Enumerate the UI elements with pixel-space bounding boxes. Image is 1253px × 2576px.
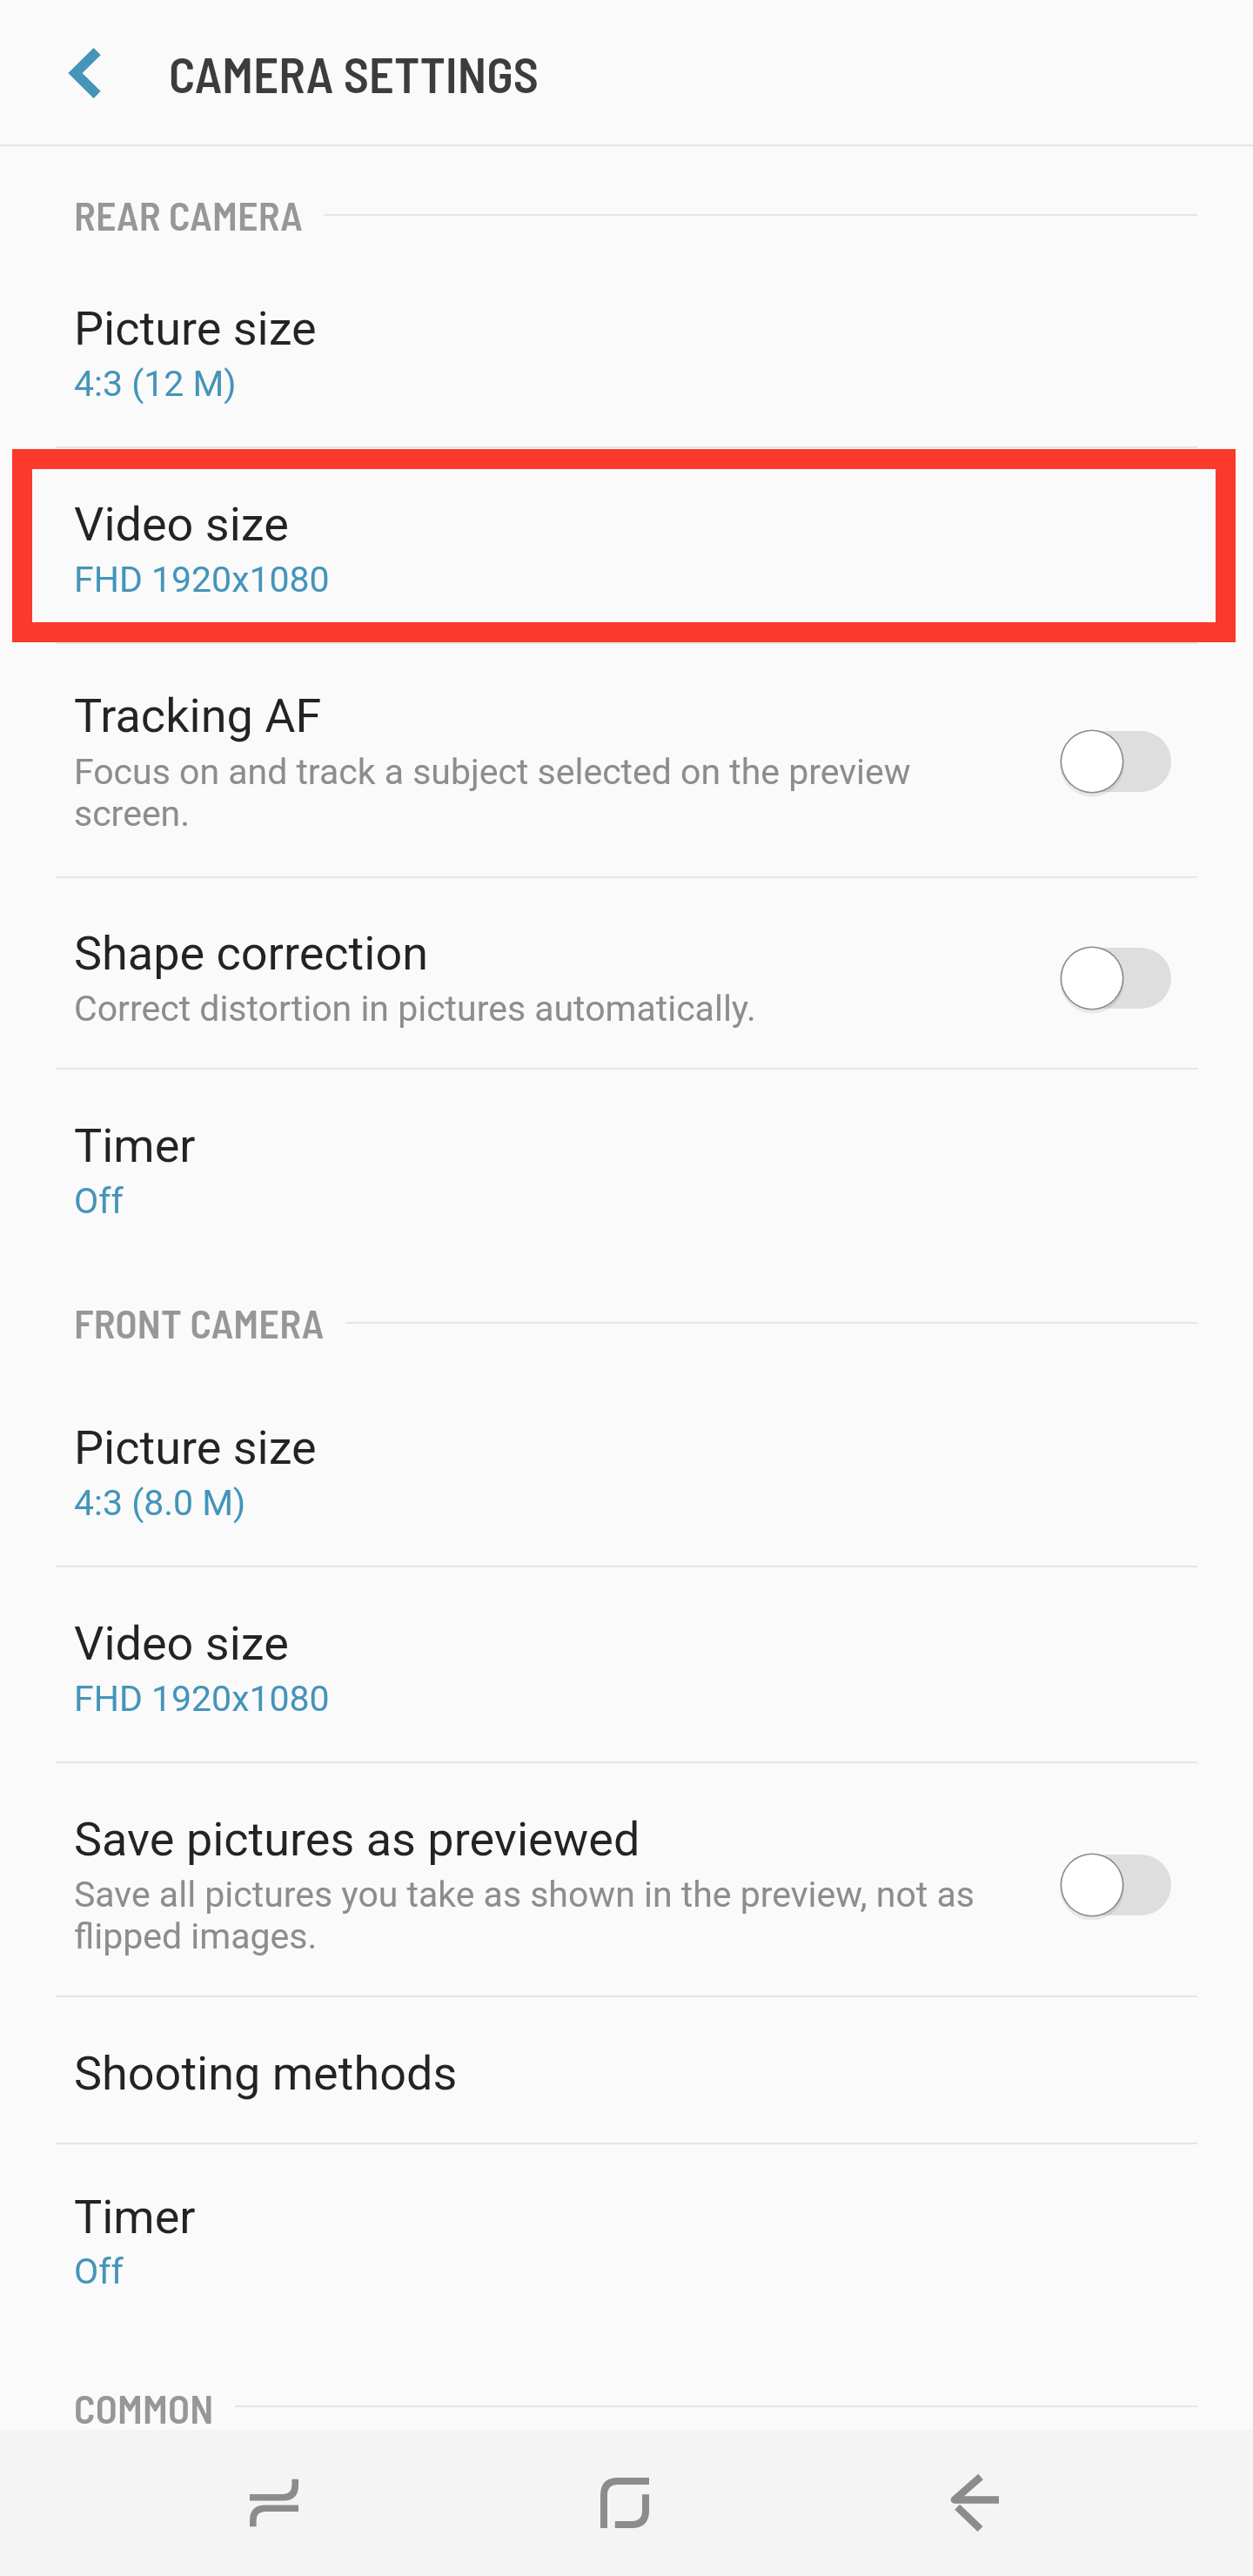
staticText: Timer (74, 2190, 196, 2244)
staticText: COMMON (74, 2384, 214, 2428)
button[interactable]: Picture size (0, 1372, 1253, 1566)
button[interactable]: Timer (0, 2144, 1253, 2336)
staticText: Picture size (74, 1420, 317, 1475)
staticText: Video size (74, 1616, 289, 1671)
staticText: Shooting methods (74, 2046, 458, 2101)
button[interactable]: Navigate up (44, 31, 127, 115)
staticText: Focus on and track a subject selected on… (74, 751, 997, 835)
button[interactable]: Save pictures as previewed (0, 1763, 1253, 1996)
staticText: Save all pictures you take as shown in t… (74, 1874, 997, 1957)
button[interactable]: Picture size (0, 252, 1253, 446)
button[interactable]: Timer (0, 1070, 1253, 1257)
button[interactable]: Tracking AF (0, 644, 1253, 876)
staticText: Tracking AF (74, 688, 322, 743)
staticText: Picture size (74, 301, 317, 356)
staticText: 4:3 (12 M) (74, 363, 237, 405)
button[interactable]: Shooting methods (0, 1997, 1253, 2143)
button[interactable]: Video size (0, 1567, 1253, 1761)
button[interactable]: Toggle, off (1058, 728, 1171, 795)
staticText: Off (74, 2251, 124, 2292)
staticText: FRONT CAMERA (74, 1298, 325, 1346)
staticText: Video size (74, 497, 289, 552)
staticText: CAMERA SETTINGS (169, 44, 539, 103)
button[interactable]: Shape correction (0, 878, 1253, 1068)
staticText: Timer (74, 1118, 196, 1173)
button[interactable]: Recent apps (196, 2430, 352, 2576)
staticText: Shape correction (74, 926, 429, 981)
staticText: FHD 1920x1080 (74, 559, 330, 600)
button[interactable]: Video size (0, 448, 1253, 642)
button[interactable]: Home (546, 2430, 703, 2576)
button[interactable]: Toggle, off (1058, 1851, 1171, 1919)
staticText: Correct distortion in pictures automatic… (74, 988, 756, 1030)
button[interactable]: Back (896, 2430, 1053, 2576)
staticText: 4:3 (8.0 M) (74, 1482, 246, 1524)
staticText: FHD 1920x1080 (74, 1678, 330, 1720)
staticText: Off (74, 1180, 124, 1222)
staticText: REAR CAMERA (74, 191, 303, 238)
button[interactable]: Toggle, off (1058, 944, 1171, 1012)
staticText: Save pictures as previewed (74, 1812, 640, 1867)
